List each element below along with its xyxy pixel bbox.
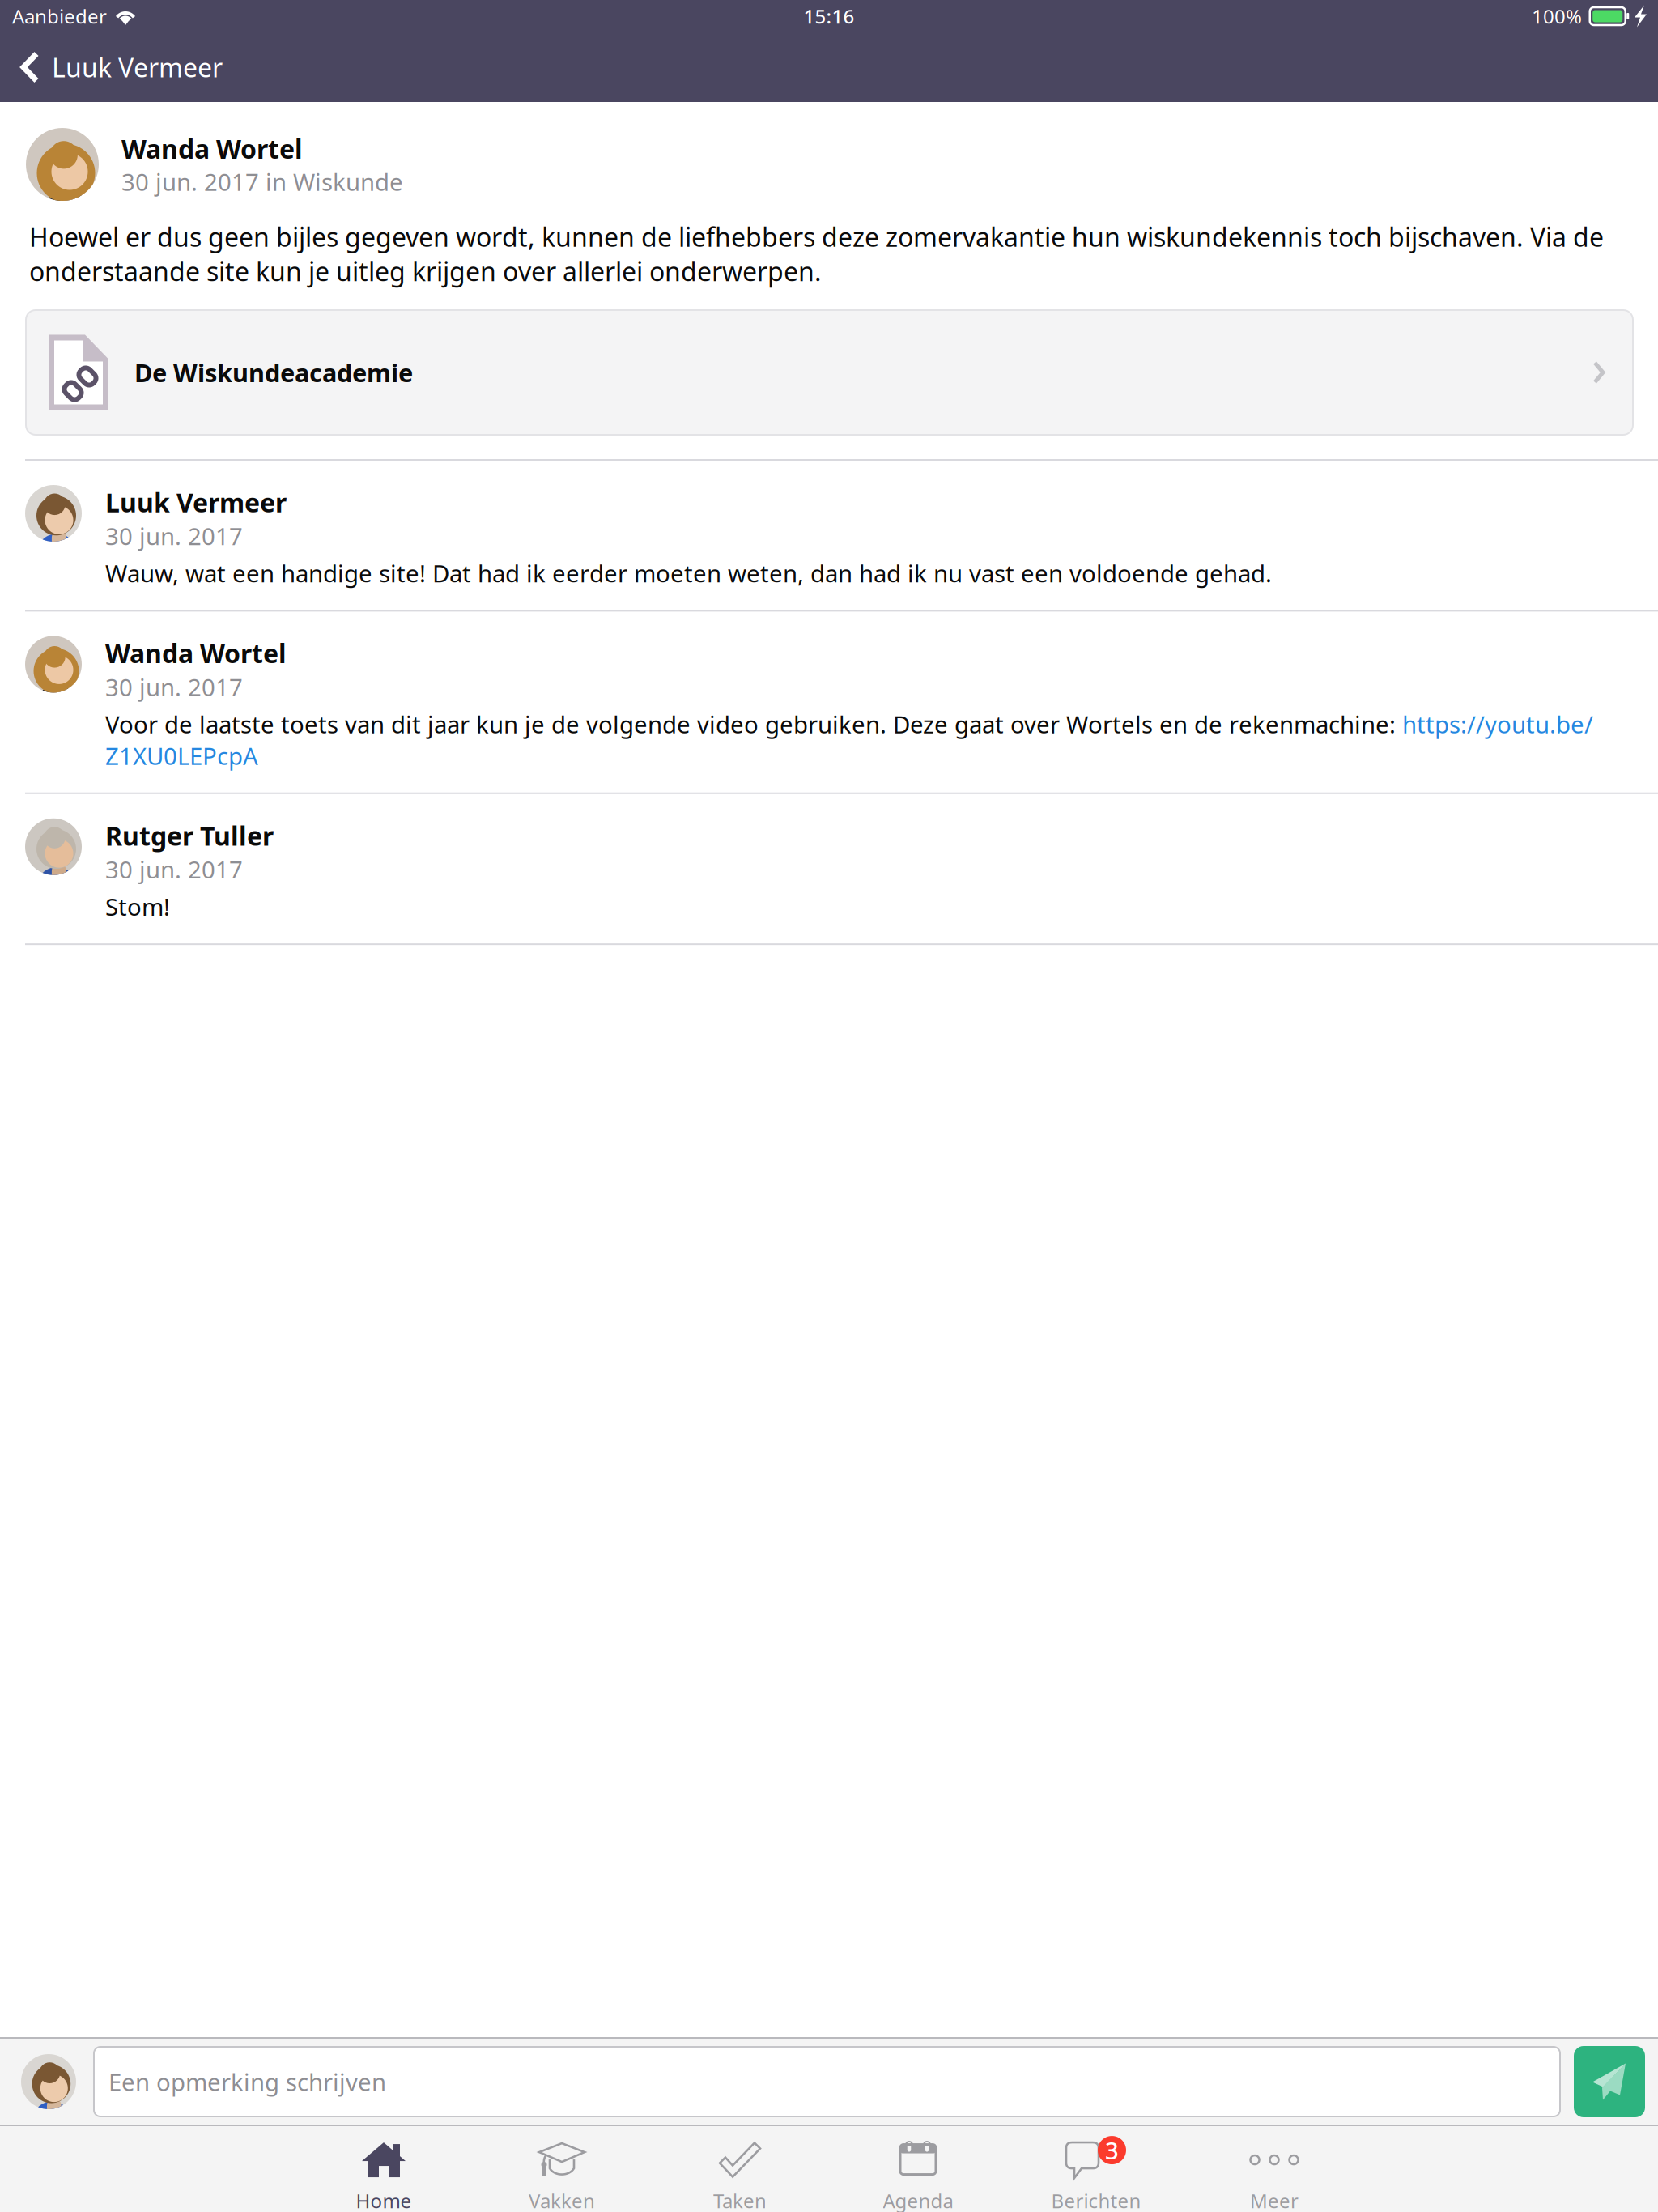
staticText: Wauw, wat een handige site! Dat had ik e… [105,557,1272,589]
button[interactable]: Luuk Vermeer [0,32,237,102]
button[interactable]: Wanda Wortel [0,612,1658,792]
staticText: 30 jun. 2017 [105,854,243,885]
staticText: 30 jun. 2017 [105,671,243,703]
button[interactable]: Vakken [473,2126,651,2212]
staticText: Meer [1250,2188,1299,2212]
staticText: Home [356,2188,412,2212]
staticText: Taken [713,2188,767,2212]
staticText: Wanda Wortel [121,131,303,166]
staticText: 30 jun. 2017 in Wiskunde [121,166,403,197]
staticText: 100% [1532,3,1582,29]
staticText: Stom! [105,891,170,922]
staticText: De Wiskundeacademie [134,356,413,389]
button[interactable]: 3 [1007,2126,1185,2212]
staticText: Agenda [883,2188,953,2212]
button[interactable]: Taken [651,2126,829,2212]
button[interactable]: Agenda [829,2126,1007,2212]
staticText: Wanda Wortel [105,636,287,670]
staticText: Luuk Vermeer [105,485,287,519]
button[interactable]: Meer [1185,2126,1363,2212]
button[interactable]: De Wiskundeacademie [0,288,1658,435]
staticText: 15:16 [803,3,855,29]
staticText: Vakken [529,2188,595,2212]
button[interactable]: Verstuur [1560,2046,1658,2117]
staticText: Een opmerking schrijven [108,2066,386,2097]
staticText: 3 [1105,2134,1119,2166]
button[interactable]: Rutger Tuller [0,794,1658,943]
staticText: Luuk Vermeer [52,50,223,84]
staticText: Aanbieder [12,3,107,29]
button[interactable]: Home [295,2126,473,2212]
button[interactable]: Een opmerking schrijven [76,2047,1560,2116]
staticText: Voor de laatste toets van dit jaar kun j… [105,708,1593,771]
staticText: Berichten [1051,2188,1141,2212]
staticText: 30 jun. 2017 [105,520,243,552]
staticText: Rutger Tuller [105,818,274,853]
button[interactable]: Luuk Vermeer [0,461,1658,610]
staticText: Hoewel er dus geen bijles gegeven wordt,… [29,219,1604,288]
